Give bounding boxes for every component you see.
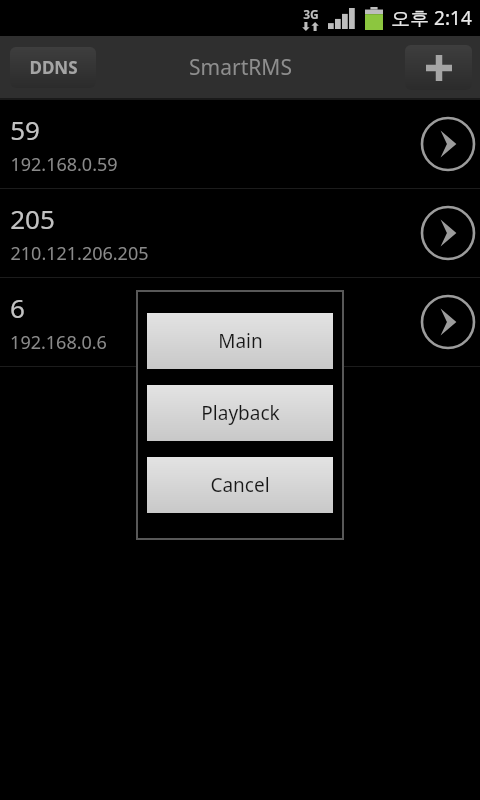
staticText: 3G [303, 6, 319, 22]
button[interactable]: Main [147, 313, 333, 369]
staticText: 210.121.206.205 [10, 241, 149, 266]
staticText: Main [218, 328, 263, 354]
staticText: 오후 2:14 [391, 5, 472, 31]
staticText: DDNS [29, 56, 78, 79]
staticText: 192.168.0.6 [10, 330, 107, 355]
staticText: 192.168.0.59 [10, 152, 118, 177]
button[interactable]: Playback [147, 385, 333, 441]
button[interactable]: 6 [0, 278, 480, 366]
button[interactable]: Add device [405, 45, 472, 90]
staticText: SmartRMS [189, 53, 292, 82]
button[interactable]: Cancel [147, 457, 333, 513]
button[interactable]: 59 [0, 100, 480, 188]
staticText: 59 [10, 112, 40, 147]
button[interactable]: Open 6 [418, 292, 478, 352]
button[interactable]: Open 59 [418, 114, 478, 174]
staticText: 6 [10, 290, 25, 325]
staticText: Playback [201, 400, 280, 426]
button[interactable]: 205 [0, 189, 480, 277]
button[interactable]: Open 205 [418, 203, 478, 263]
staticText: Cancel [210, 472, 270, 498]
button[interactable]: DDNS [10, 47, 96, 88]
staticText: 205 [10, 201, 55, 236]
